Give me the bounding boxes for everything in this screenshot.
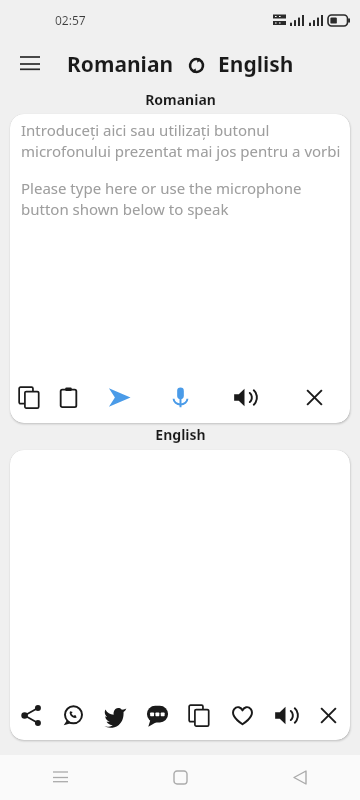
staticText: Please type here or use the microphone b…	[21, 178, 342, 220]
button[interactable]: Menu	[10, 44, 50, 84]
button[interactable]: Clear	[307, 690, 350, 740]
button[interactable]: Clear	[279, 371, 350, 423]
button[interactable]: SMS	[136, 690, 178, 740]
button[interactable]: Copy	[178, 690, 221, 740]
button[interactable]: English	[218, 50, 294, 79]
button[interactable]: Swap languages	[183, 52, 209, 78]
button[interactable]: Recents	[0, 755, 120, 800]
button[interactable]: WhatsApp	[52, 690, 94, 740]
button[interactable]: Paste	[49, 371, 88, 423]
button[interactable]: Speak	[151, 371, 209, 423]
staticText: Romanian	[145, 90, 216, 109]
button[interactable]: Home	[120, 755, 240, 800]
button[interactable]: Copy	[10, 371, 49, 423]
button[interactable]: Introduceți aici sau utilizați butonul m…	[10, 114, 350, 371]
button[interactable]: Romanian	[67, 50, 174, 79]
button[interactable]: Share	[10, 690, 52, 740]
button[interactable]: Twitter	[94, 690, 136, 740]
button[interactable]: Favorite	[221, 690, 264, 740]
staticText: Introduceți aici sau utilizați butonul m…	[21, 120, 342, 162]
staticText: 02:57	[55, 12, 86, 28]
button[interactable]: Listen	[264, 690, 307, 740]
staticText: English	[155, 425, 206, 444]
button[interactable]: Translate	[88, 371, 151, 423]
button[interactable]: Listen	[209, 371, 279, 423]
button[interactable]: Back	[240, 755, 360, 800]
